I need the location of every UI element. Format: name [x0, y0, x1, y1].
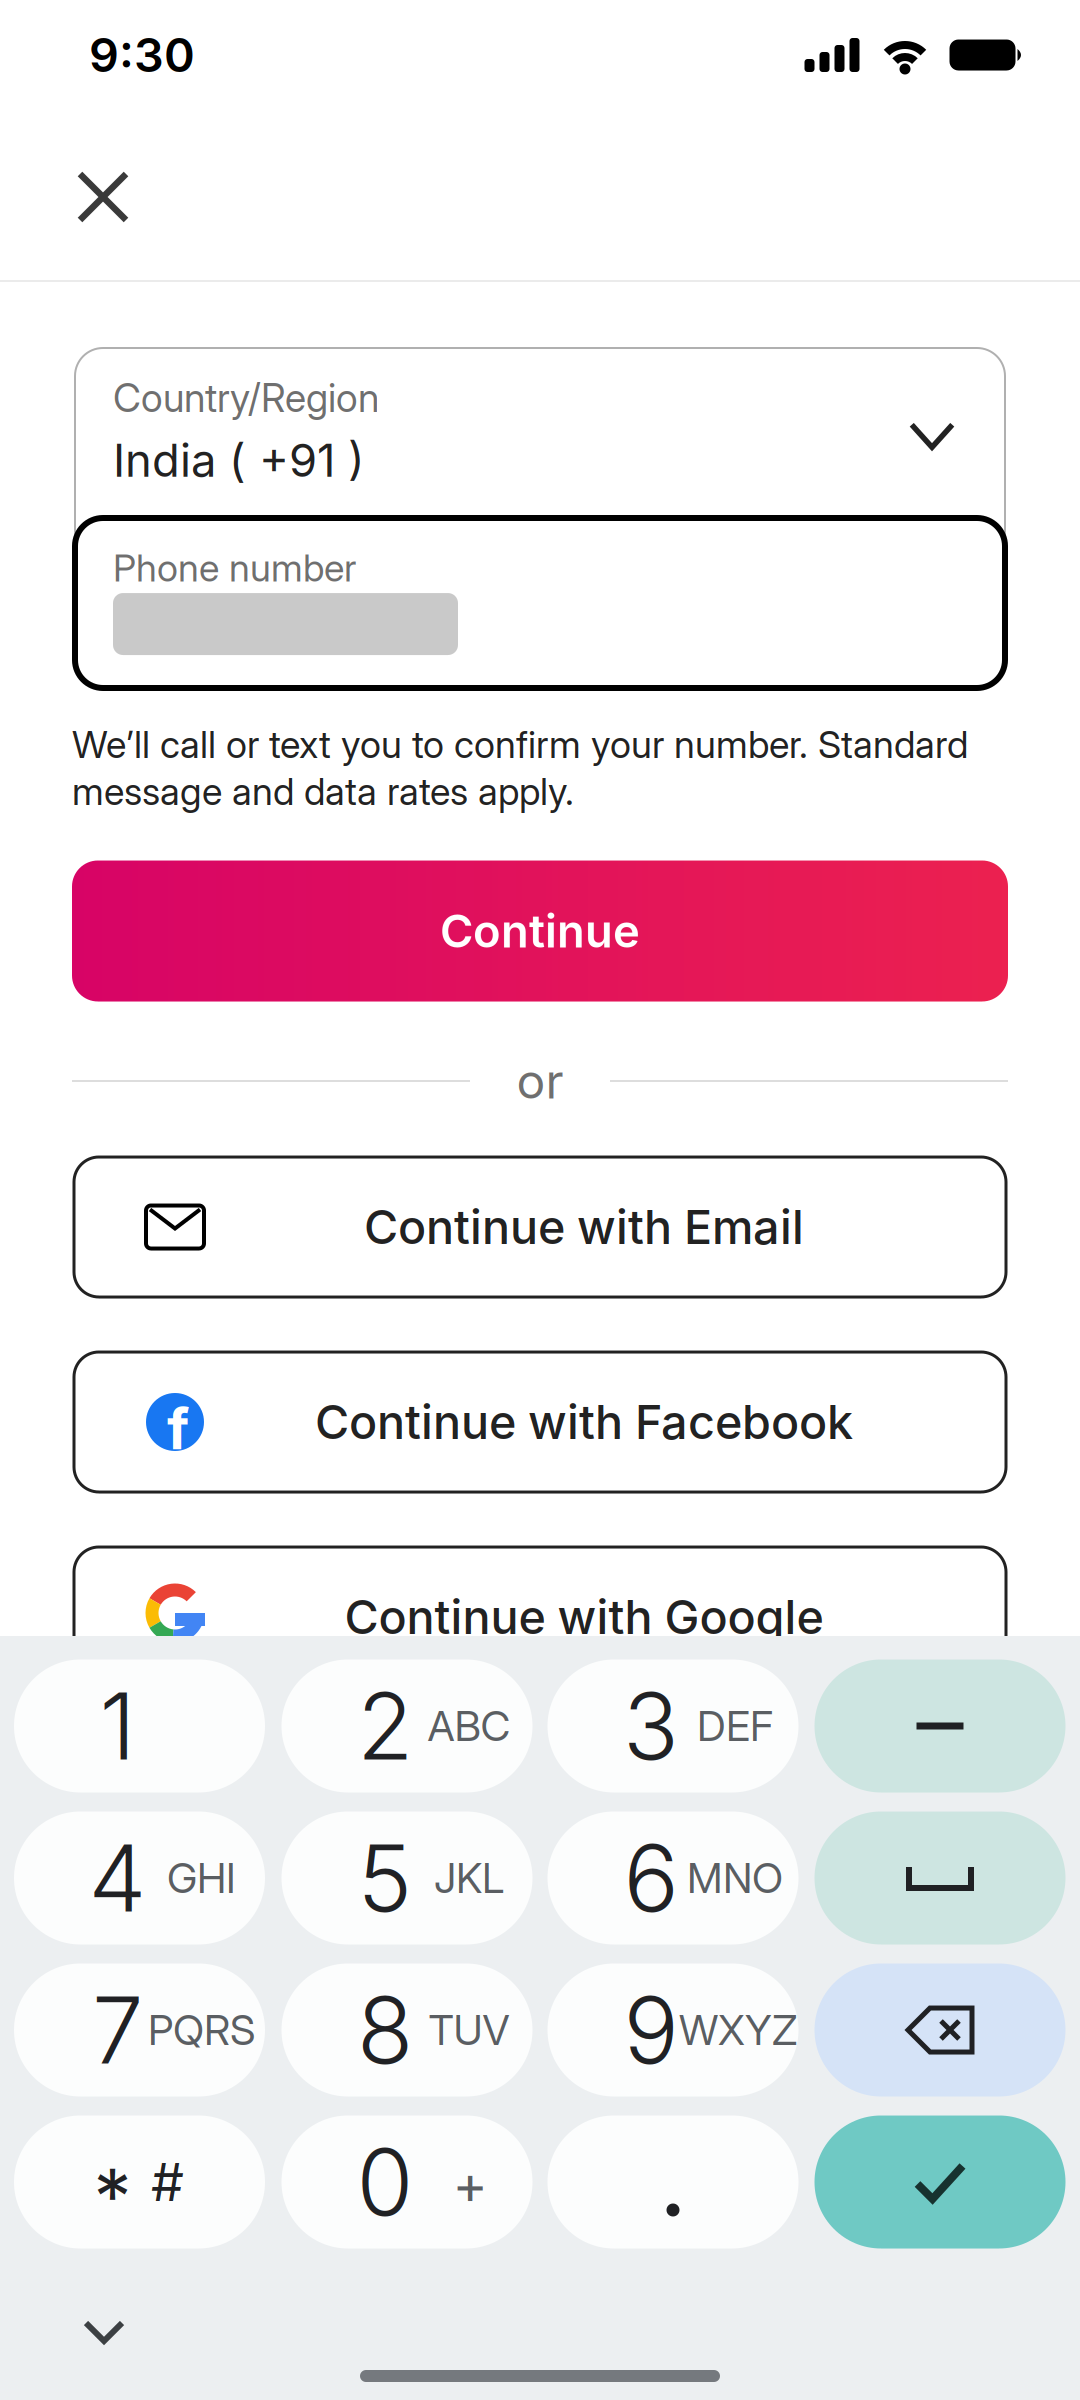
button[interactable]: Decimal point [547, 2115, 798, 2248]
staticText: JKL [434, 1854, 504, 1902]
button[interactable]: Dash [814, 1659, 1065, 1792]
staticText: 8 [357, 1976, 413, 2084]
staticText: TUV [428, 2006, 509, 2054]
button[interactable]: Space [814, 1811, 1065, 1944]
button[interactable]: Continue with Facebook [74, 1352, 1006, 1492]
staticText: India ( +91 ) [113, 434, 365, 487]
staticText: Continue [440, 904, 640, 958]
staticText: PQRS [148, 2006, 255, 2054]
staticText: WXYZ [679, 2006, 797, 2054]
staticText: 2 [357, 1672, 413, 1780]
button[interactable]: 8 [281, 1963, 532, 2096]
button[interactable]: Done [814, 2115, 1065, 2248]
staticText: Country/Region [113, 375, 379, 421]
button[interactable]: 3 [547, 1659, 798, 1792]
button[interactable]: 2 [281, 1659, 532, 1792]
staticText: + [452, 2152, 487, 2215]
staticText: 6 [623, 1824, 678, 1932]
button[interactable]: 6 [547, 1811, 798, 1944]
staticText: 1 [99, 1672, 135, 1780]
staticText: message and data rates apply. [72, 769, 574, 813]
staticText: Continue with Google [344, 1589, 823, 1645]
staticText: GHI [167, 1854, 236, 1902]
button[interactable]: Country/Region, India ( +91 ) [75, 348, 1005, 558]
staticText: DEF [697, 1702, 773, 1750]
button[interactable]: Continue with Email [74, 1157, 1006, 1297]
button[interactable]: 9 [547, 1963, 798, 2096]
button[interactable]: 5 [281, 1811, 532, 1944]
staticText: 5 [357, 1824, 412, 1932]
staticText: ABC [427, 1702, 510, 1750]
staticText: Continue with Email [364, 1199, 804, 1255]
button[interactable]: 4 [14, 1811, 265, 1944]
staticText: We’ll call or text you to confirm your n… [72, 722, 968, 766]
button[interactable]: 7 [14, 1963, 265, 2096]
button[interactable]: Delete [814, 1963, 1065, 2096]
button[interactable]: Continue [72, 860, 1008, 1001]
staticText: Phone number [113, 546, 356, 590]
button[interactable]: 1 [14, 1659, 265, 1792]
staticText: 3 [623, 1672, 679, 1780]
staticText: f [167, 1396, 189, 1462]
staticText: or [516, 1053, 563, 1109]
staticText: 9 [623, 1976, 678, 2084]
staticText: 0 [356, 2128, 413, 2236]
button[interactable]: Close [70, 164, 136, 230]
staticText: * [93, 2151, 131, 2241]
staticText: MNO [687, 1854, 783, 1902]
button[interactable]: 0 [281, 2115, 532, 2248]
button[interactable]: Phone number [75, 518, 1005, 688]
staticText: 7 [92, 1976, 143, 2084]
button[interactable]: Continue with Google [74, 1547, 1006, 1687]
button[interactable]: Hide keyboard [74, 2307, 134, 2357]
staticText: Continue with Facebook [315, 1394, 853, 1450]
staticText: # [151, 2151, 184, 2213]
staticText: 9:30 [89, 27, 195, 83]
staticText: 4 [88, 1824, 146, 1932]
button[interactable]: Symbols [14, 2115, 265, 2248]
